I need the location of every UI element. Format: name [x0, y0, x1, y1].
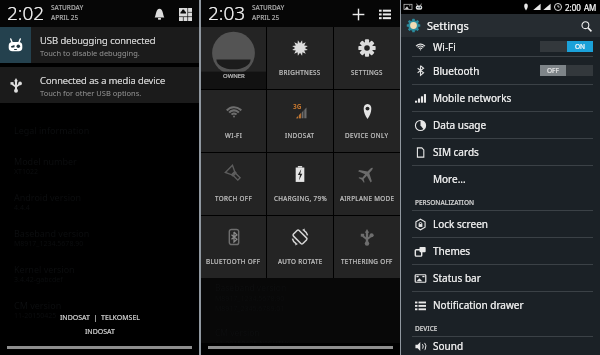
button[interactable]: More...: [401, 166, 600, 192]
staticText: Lock screen: [433, 217, 489, 231]
button[interactable]: WI-FI: [201, 90, 266, 152]
staticText: TETHERING OFF: [341, 257, 393, 266]
button[interactable]: SETTINGS: [334, 27, 400, 89]
staticText: INDOSAT: [85, 327, 115, 337]
staticText: Kernel version: [14, 263, 75, 275]
staticText: Baseband version: [14, 227, 90, 239]
staticText: OWNER: [223, 72, 245, 80]
staticText: INDOSAT: [285, 131, 315, 140]
button[interactable]: Show notifications: [373, 2, 397, 26]
button[interactable]: TETHERING OFF: [334, 216, 400, 278]
staticText: PERSONALIZATION: [415, 198, 475, 207]
button[interactable]: Quick settings: [173, 2, 197, 26]
staticText: Touch for other USB options.: [40, 88, 142, 98]
staticText: Wi-Fi: [433, 40, 456, 54]
staticText: 2:02: [7, 0, 45, 26]
button[interactable]: BLUETOOTH OFF: [201, 216, 266, 278]
button[interactable]: OWNER: [201, 27, 266, 89]
staticText: CHARGING, 79%: [274, 194, 327, 203]
staticText: SATURDAY: [252, 3, 285, 12]
staticText: 3G: [293, 102, 302, 111]
button[interactable]: AUTO ROTATE: [267, 216, 333, 278]
staticText: SIM cards: [433, 145, 479, 159]
staticText: Bluetooth: [433, 64, 480, 78]
staticText: AM: [584, 2, 597, 13]
staticText: CM version: [14, 299, 62, 311]
button[interactable]: Data usage: [401, 112, 600, 138]
staticText: Data usage: [433, 118, 487, 132]
button[interactable]: Bluetooth: [401, 57, 600, 84]
staticText: SETTINGS: [351, 68, 383, 77]
button[interactable]: DEVICE ONLY: [334, 90, 400, 152]
button[interactable]: 3G: [267, 90, 333, 152]
button[interactable]: Mobile networks: [401, 85, 600, 111]
button[interactable]: Status bar: [401, 265, 600, 291]
button[interactable]: CHARGING, 79%: [267, 153, 333, 215]
staticText: OFF: [547, 66, 559, 75]
staticText: Android version: [14, 191, 82, 203]
staticText: APRIL 25: [252, 13, 280, 22]
button[interactable]: Wi-Fi: [401, 37, 600, 56]
staticText: 3.4.42-gabcdef: [14, 275, 63, 285]
staticText: 11-20150425-NIGHTLY: [215, 339, 289, 349]
staticText: 2:03: [208, 0, 246, 26]
staticText: Mobile networks: [433, 91, 512, 105]
button[interactable]: Connected as a media device: [0, 67, 199, 103]
staticText: WI-FI: [225, 131, 243, 140]
button[interactable]: Notifications: [147, 2, 171, 26]
staticText: Model number: [14, 155, 77, 167]
staticText: More...: [433, 172, 466, 186]
staticText: TORCH OFF: [215, 194, 253, 203]
button[interactable]: Lock screen: [401, 211, 600, 237]
staticText: Themes: [433, 244, 471, 258]
staticText: AIRPLANE MODE: [340, 194, 395, 203]
staticText: BLUETOOTH OFF: [206, 257, 261, 266]
button[interactable]: TORCH OFF: [201, 153, 266, 215]
staticText: Sound: [433, 339, 464, 353]
staticText: DEVICE: [415, 324, 438, 333]
staticText: Status bar: [433, 271, 481, 285]
staticText: 4.4.4: [14, 203, 30, 213]
button[interactable]: Sound: [401, 337, 600, 355]
button[interactable]: Notification drawer: [401, 292, 600, 318]
button[interactable]: SIM cards: [401, 139, 600, 165]
staticText: M8917_1234.5678.90: [14, 239, 84, 249]
staticText: Settings: [427, 18, 469, 33]
staticText: 2:00: [565, 2, 581, 13]
staticText: INDOSAT | TELKOMSEL: [60, 313, 140, 323]
staticText: USB debugging connected: [40, 34, 156, 47]
staticText: ON: [575, 42, 586, 51]
staticText: AUTO ROTATE: [278, 257, 323, 266]
staticText: DEVICE ONLY: [345, 131, 389, 140]
staticText: Touch to disable debugging.: [40, 48, 140, 58]
button[interactable]: BRIGHTNESS: [267, 27, 333, 89]
staticText: Legal information: [14, 124, 90, 136]
staticText: Connected as a media device: [40, 74, 166, 87]
button[interactable]: USB debugging connected: [0, 27, 199, 63]
button[interactable]: Themes: [401, 238, 600, 264]
staticText: SATURDAY: [51, 3, 84, 12]
button[interactable]: Add tile: [346, 2, 370, 26]
staticText: APRIL 25: [51, 13, 79, 22]
button[interactable]: Search: [576, 16, 596, 36]
button[interactable]: AIRPLANE MODE: [334, 153, 400, 215]
staticText: BRIGHTNESS: [279, 68, 321, 77]
staticText: Notification drawer: [433, 298, 524, 312]
